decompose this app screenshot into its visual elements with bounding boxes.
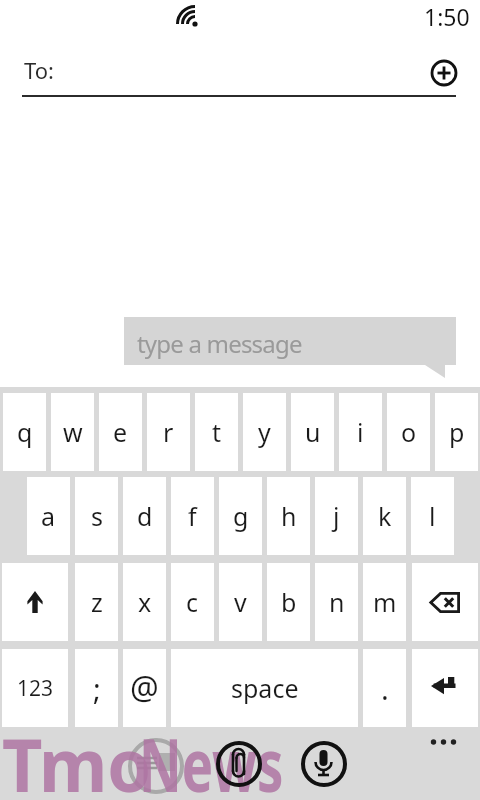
button[interactable]: space (171, 649, 358, 727)
staticText: w (63, 415, 83, 449)
staticText: q (17, 415, 33, 449)
button[interactable]: type a message (124, 317, 456, 365)
button[interactable] (412, 563, 478, 641)
button[interactable]: g (219, 477, 262, 555)
button[interactable]: x (123, 563, 166, 641)
staticText: o (401, 415, 417, 449)
button[interactable]: v (219, 563, 262, 641)
staticText: 123 (17, 674, 54, 703)
staticText: To: (24, 55, 54, 85)
staticText: j (333, 499, 340, 533)
staticText: News (139, 714, 284, 800)
staticText: z (91, 585, 103, 619)
staticText: @ (130, 666, 159, 710)
button[interactable]: z (75, 563, 118, 641)
button[interactable]: h (267, 477, 310, 555)
button[interactable]: r (147, 393, 190, 471)
staticText: p (449, 415, 465, 449)
staticText: e (113, 415, 128, 449)
button[interactable]: i (339, 393, 382, 471)
button[interactable]: n (315, 563, 358, 641)
button[interactable]: b (267, 563, 310, 641)
button[interactable]: d (123, 477, 166, 555)
button[interactable]: @ (123, 649, 166, 727)
staticText: f (188, 499, 197, 533)
staticText: ; (93, 669, 101, 708)
button[interactable] (301, 741, 347, 787)
button[interactable]: ; (75, 649, 118, 727)
staticText: u (305, 415, 321, 449)
button[interactable] (2, 563, 68, 641)
staticText: d (137, 499, 153, 533)
staticText: y (258, 415, 271, 449)
button[interactable]: 123 (2, 649, 68, 727)
button[interactable]: a (27, 477, 70, 555)
staticText: x (138, 585, 152, 619)
staticText: i (357, 415, 364, 449)
staticText: v (234, 585, 247, 619)
button[interactable] (429, 58, 459, 88)
staticText: 1:50 (424, 1, 470, 27)
button[interactable]: To: (0, 50, 480, 96)
staticText: type a message (137, 327, 302, 360)
button[interactable] (425, 732, 465, 752)
button[interactable]: f (171, 477, 214, 555)
staticText: b (281, 585, 297, 619)
staticText: space (231, 671, 299, 705)
button[interactable]: o (387, 393, 430, 471)
button[interactable]: w (51, 393, 94, 471)
staticText: n (329, 585, 345, 619)
button[interactable] (412, 649, 478, 727)
staticText: Tmo (2, 714, 152, 800)
button[interactable]: p (435, 393, 478, 471)
button[interactable]: c (171, 563, 214, 641)
button[interactable]: e (99, 393, 142, 471)
button[interactable]: . (363, 649, 406, 727)
staticText: c (186, 585, 199, 619)
button[interactable] (216, 741, 262, 787)
staticText: g (233, 499, 249, 533)
button[interactable]: s (75, 477, 118, 555)
staticText: m (373, 585, 397, 619)
staticText: t (212, 415, 222, 449)
button[interactable]: q (3, 393, 46, 471)
staticText: . (381, 669, 389, 708)
button[interactable]: u (291, 393, 334, 471)
staticText: h (281, 499, 297, 533)
button[interactable]: t (195, 393, 238, 471)
staticText: l (429, 499, 436, 533)
staticText: a (41, 499, 56, 533)
button[interactable]: l (411, 477, 454, 555)
button[interactable]: y (243, 393, 286, 471)
staticText: k (378, 499, 392, 533)
button[interactable]: m (363, 563, 406, 641)
button[interactable]: k (363, 477, 406, 555)
staticText: r (163, 415, 174, 449)
button[interactable]: j (315, 477, 358, 555)
staticText: s (91, 499, 103, 533)
